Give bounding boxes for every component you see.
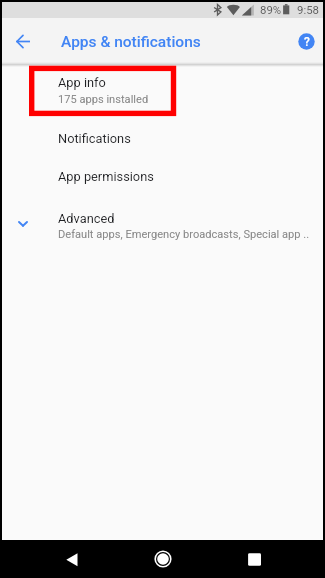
staticText: Advanced xyxy=(58,211,115,226)
button[interactable]: Notifications xyxy=(2,121,323,160)
button[interactable]: App info xyxy=(2,66,323,116)
staticText: Default apps, Emergency broadcasts, Spec… xyxy=(58,228,312,241)
button[interactable]: Home xyxy=(142,540,188,578)
staticText: 89% xyxy=(260,3,282,16)
staticText: 175 apps installed xyxy=(58,93,312,106)
button[interactable]: Advanced xyxy=(2,202,323,253)
button[interactable]: App permissions xyxy=(2,160,323,199)
staticText: ? xyxy=(304,35,310,49)
button[interactable]: Help xyxy=(290,25,323,58)
staticText: App permissions xyxy=(58,169,154,184)
button[interactable]: Navigate up xyxy=(6,24,40,58)
staticText: Notifications xyxy=(58,131,131,146)
staticText: Apps & notifications xyxy=(61,33,201,51)
button[interactable]: Back xyxy=(46,540,92,578)
staticText: 9:58 xyxy=(297,3,319,16)
staticText: App info xyxy=(58,75,106,90)
button[interactable]: Recent apps xyxy=(234,540,280,578)
